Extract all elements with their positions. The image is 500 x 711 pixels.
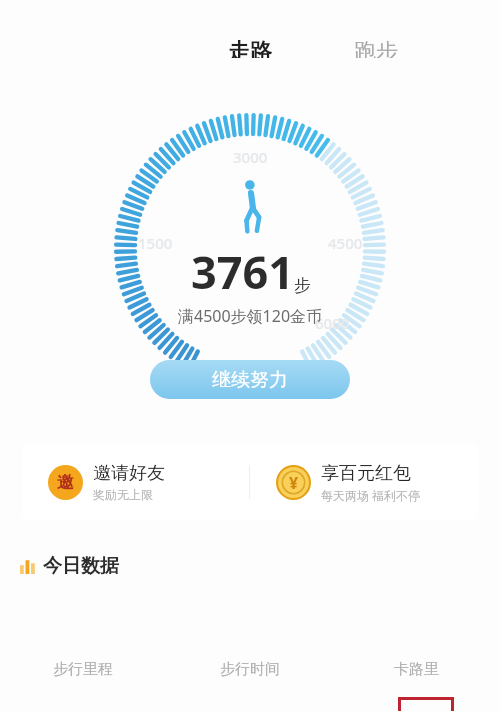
staticText: 1500 bbox=[138, 233, 173, 253]
button[interactable]: 步行时间 bbox=[166, 656, 333, 683]
staticText: 奖励无上限 bbox=[93, 487, 153, 502]
staticText: 今日数据 bbox=[43, 554, 119, 578]
staticText: 步行里程 bbox=[53, 660, 113, 679]
staticText: 步 bbox=[294, 275, 311, 296]
staticText: 3761 bbox=[191, 241, 294, 302]
staticText: 步行时间 bbox=[220, 660, 280, 679]
staticText: 享百元红包 bbox=[321, 462, 411, 485]
staticText: 满4500步领120金币 bbox=[178, 305, 323, 327]
staticText: 邀 bbox=[57, 472, 74, 493]
staticText: 3000 bbox=[233, 147, 268, 167]
staticText: 邀请好友 bbox=[93, 462, 165, 485]
button[interactable]: 走路 bbox=[218, 0, 282, 96]
staticText: 跑步 bbox=[354, 38, 398, 58]
staticText: 每天两场 福利不停 bbox=[321, 487, 421, 503]
staticText: 4500 bbox=[328, 233, 363, 253]
staticText: 卡路里 bbox=[394, 660, 439, 679]
staticText: 继续努力 bbox=[212, 368, 288, 392]
button[interactable]: 步行里程 bbox=[0, 656, 166, 683]
button[interactable]: 卡路里 bbox=[333, 656, 500, 683]
button[interactable]: 跑步 bbox=[344, 0, 408, 96]
staticText: 走路 bbox=[228, 38, 272, 58]
button[interactable]: 邀 bbox=[22, 443, 249, 521]
button[interactable]: ¥ bbox=[250, 443, 478, 521]
button[interactable]: 继续努力 bbox=[150, 360, 350, 399]
staticText: ¥ bbox=[289, 472, 299, 494]
staticText: 6000 bbox=[315, 313, 350, 333]
